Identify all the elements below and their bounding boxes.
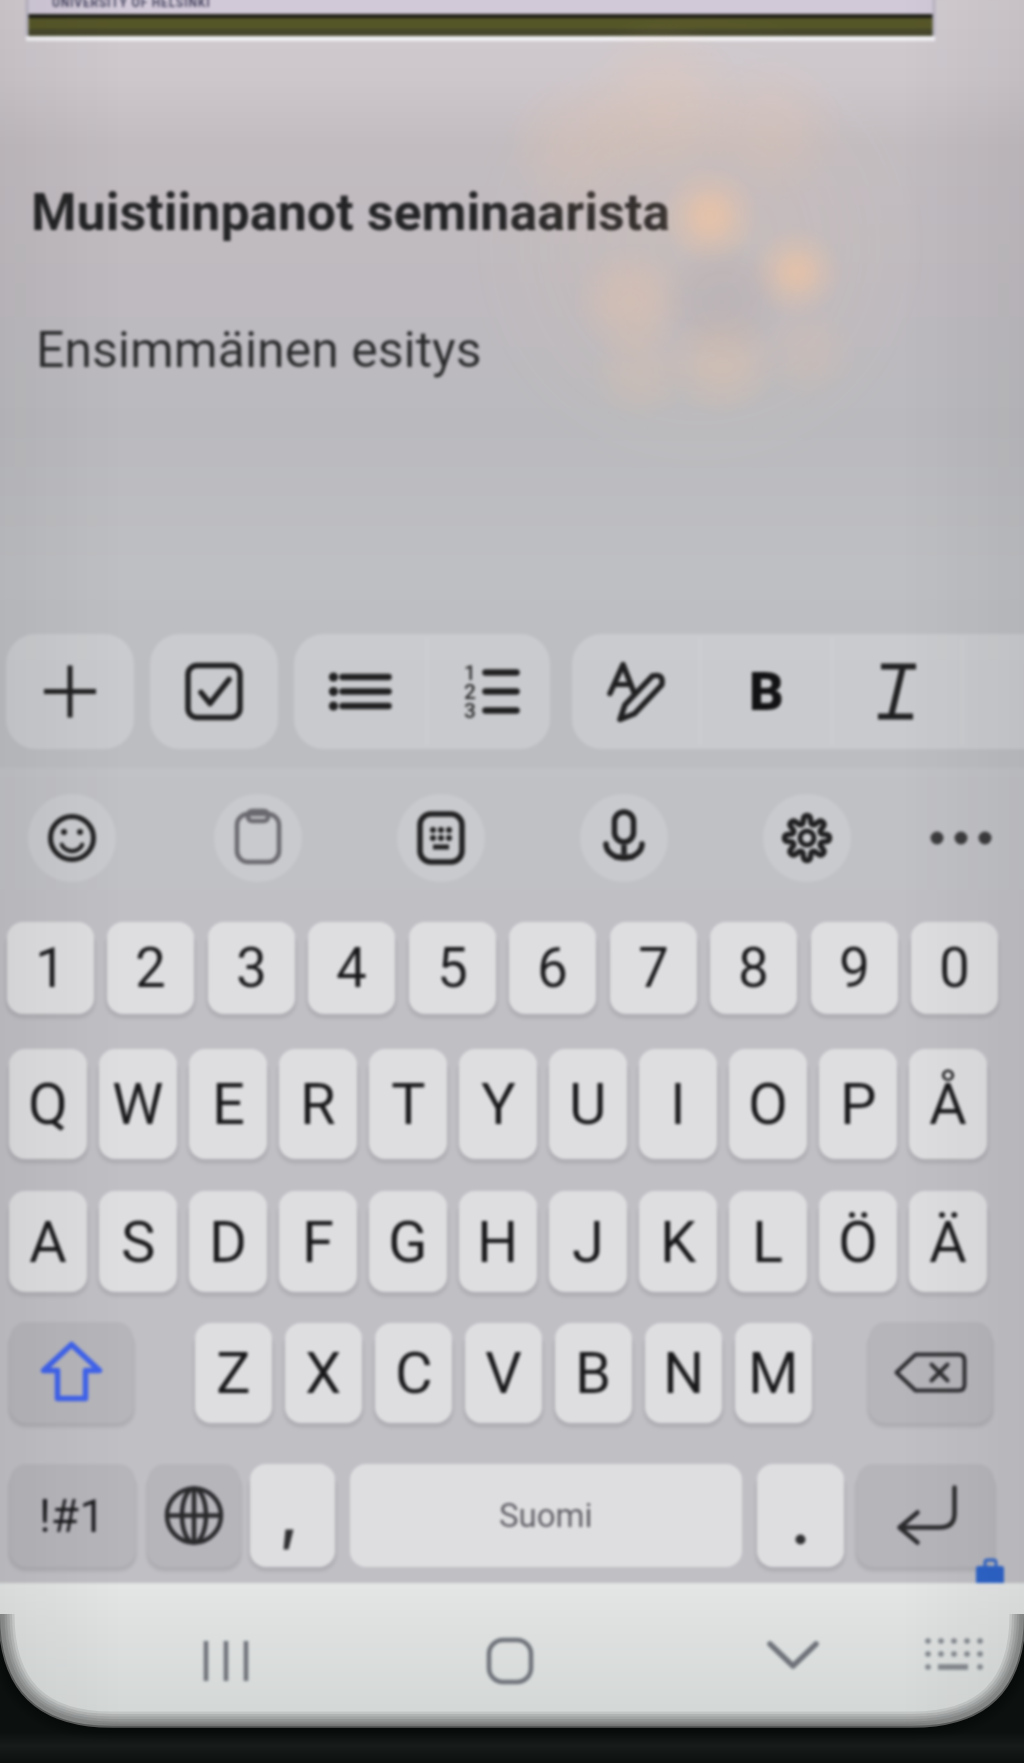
staticText: Suomi	[499, 1496, 593, 1535]
button[interactable]: Numbered list	[427, 634, 550, 749]
staticText: P	[840, 1070, 877, 1138]
button[interactable]: G	[369, 1191, 447, 1292]
staticText: W	[112, 1070, 164, 1138]
button[interactable]: Backspace	[869, 1322, 992, 1423]
button[interactable]: Comma	[250, 1464, 335, 1567]
staticText: 0	[939, 936, 970, 1000]
button[interactable]: Home	[450, 1606, 570, 1716]
button[interactable]: Å	[909, 1049, 987, 1159]
staticText: M	[748, 1339, 799, 1407]
staticText: J	[572, 1208, 605, 1276]
button[interactable]: 8	[710, 922, 797, 1014]
button[interactable]: E	[189, 1049, 267, 1159]
button[interactable]: Shift	[10, 1322, 133, 1423]
button[interactable]: L	[729, 1191, 807, 1292]
button[interactable]: Ö	[819, 1191, 897, 1292]
button[interactable]: 0	[911, 922, 998, 1014]
button[interactable]: C	[375, 1323, 452, 1423]
staticText: Q	[28, 1070, 68, 1138]
button[interactable]: S	[99, 1191, 177, 1292]
button[interactable]: V	[465, 1323, 542, 1423]
staticText: D	[209, 1208, 248, 1276]
button[interactable]: X	[285, 1323, 362, 1423]
staticText: G	[388, 1208, 428, 1276]
button[interactable]: 7	[610, 922, 697, 1014]
button[interactable]: 6	[509, 922, 596, 1014]
staticText: 7	[638, 936, 669, 1000]
button[interactable]: R	[279, 1049, 357, 1159]
button[interactable]: 4	[308, 922, 395, 1014]
button[interactable]: Languages	[148, 1464, 240, 1567]
button[interactable]: P	[819, 1049, 897, 1159]
button[interactable]: Clipboard	[214, 794, 302, 882]
button[interactable]: Z	[195, 1323, 272, 1423]
staticText: C	[395, 1339, 433, 1407]
button[interactable]: D	[189, 1191, 267, 1292]
staticText: X	[305, 1339, 342, 1407]
button[interactable]: K	[639, 1191, 717, 1292]
button[interactable]: Period	[757, 1464, 844, 1567]
button[interactable]: Italic	[832, 634, 962, 749]
button[interactable]: F	[279, 1191, 357, 1292]
button[interactable]: Hide keyboard	[733, 1600, 853, 1710]
button[interactable]: B	[700, 634, 832, 749]
staticText: B	[749, 660, 784, 723]
button[interactable]: H	[459, 1191, 537, 1292]
staticText: T	[391, 1070, 426, 1138]
staticText: N	[663, 1339, 705, 1407]
button[interactable]: 3	[208, 922, 295, 1014]
staticText: UNIVERSITY OF HELSINKI	[52, 0, 211, 10]
button[interactable]: B	[555, 1323, 632, 1423]
staticText: E	[212, 1070, 245, 1138]
button[interactable]: N	[645, 1323, 722, 1423]
staticText: 9	[839, 936, 870, 1000]
staticText: 5	[437, 936, 468, 1000]
staticText: V	[485, 1339, 522, 1407]
staticText: !#1	[39, 1489, 106, 1543]
staticText: Y	[481, 1070, 516, 1138]
staticText: 1	[464, 661, 476, 686]
button[interactable]: Settings	[763, 794, 851, 882]
staticText: 6	[537, 936, 568, 1000]
button[interactable]: M	[735, 1323, 812, 1423]
button[interactable]: 5	[409, 922, 496, 1014]
staticText: U	[569, 1070, 607, 1138]
button[interactable]: Insert	[6, 634, 134, 749]
button[interactable]: Emoji	[28, 794, 116, 882]
button[interactable]: !#1	[10, 1464, 135, 1567]
button[interactable]: T	[369, 1049, 447, 1159]
button[interactable]: More options	[916, 793, 1006, 883]
button[interactable]: 1	[7, 922, 94, 1014]
button[interactable]: Voice input	[580, 794, 668, 882]
staticText: 8	[738, 936, 769, 1000]
staticText: I	[670, 1070, 686, 1138]
button[interactable]: Switch keyboard	[894, 1599, 1014, 1709]
button[interactable]: I	[639, 1049, 717, 1159]
button[interactable]: Ä	[909, 1191, 987, 1292]
button[interactable]: Bulleted list	[294, 634, 427, 749]
button[interactable]: Checklist	[150, 634, 278, 749]
button[interactable]: Y	[459, 1049, 537, 1159]
button[interactable]: A	[9, 1191, 87, 1292]
staticText: H	[477, 1208, 519, 1276]
button[interactable]: O	[729, 1049, 807, 1159]
staticText: Muistiinpanot seminaarista	[31, 182, 671, 243]
button[interactable]: 9	[811, 922, 898, 1014]
button[interactable]: W	[99, 1049, 177, 1159]
staticText: F	[302, 1208, 335, 1276]
button[interactable]: Keyboard layout	[397, 794, 485, 882]
button[interactable]: Highlight	[572, 634, 700, 749]
staticText: 4	[336, 936, 367, 1000]
button[interactable]: U	[549, 1049, 627, 1159]
button[interactable]: Q	[9, 1049, 87, 1159]
button[interactable]: Enter	[857, 1464, 994, 1567]
staticText: Å	[929, 1070, 967, 1138]
button[interactable]: Recent apps	[166, 1606, 286, 1716]
button[interactable]: Suomi	[350, 1464, 742, 1567]
staticText: Ä	[929, 1208, 967, 1276]
staticText: K	[660, 1208, 697, 1276]
button[interactable]: 2	[107, 922, 194, 1014]
staticText: Ensimmäinen esitys	[36, 321, 482, 380]
button[interactable]: J	[549, 1191, 627, 1292]
staticText: 1	[35, 936, 66, 1000]
